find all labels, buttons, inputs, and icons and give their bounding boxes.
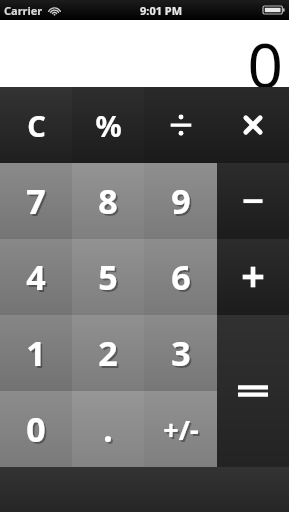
staticText: 7 (28, 180, 48, 226)
button[interactable]: +/- (144, 391, 217, 467)
staticText: 3 (171, 330, 191, 376)
staticText: 6 (171, 254, 191, 300)
button[interactable]: 0 (0, 391, 72, 467)
button[interactable]: Divide (144, 87, 217, 163)
staticText: 0 (26, 406, 46, 452)
staticText: 4 (26, 254, 46, 300)
button[interactable]: 2 (72, 315, 144, 391)
staticText: . (103, 406, 113, 452)
button[interactable]: 7 (0, 163, 72, 239)
button[interactable]: 6 (144, 239, 217, 315)
staticText: 9 (173, 180, 193, 226)
staticText: 9 (171, 178, 191, 224)
button[interactable]: Equals (217, 315, 289, 467)
staticText: 8 (98, 178, 118, 224)
button[interactable]: 1 (0, 315, 72, 391)
staticText: 0 (247, 22, 283, 89)
staticText: 0 (28, 408, 48, 454)
button[interactable]: Minus (217, 163, 289, 239)
button[interactable]: . (72, 391, 144, 467)
staticText: 4 (28, 256, 48, 302)
staticText: 1 (28, 332, 48, 378)
button[interactable]: 9 (144, 163, 217, 239)
staticText: 2 (98, 330, 118, 376)
button[interactable]: Multiply (217, 87, 289, 163)
staticText: 3 (173, 332, 193, 378)
staticText: 8 (100, 180, 120, 226)
staticText: 2 (100, 332, 120, 378)
staticText: 5 (98, 254, 118, 300)
button[interactable]: 4 (0, 239, 72, 315)
staticText: Carrier (4, 3, 43, 18)
staticText: 9:01 PM (140, 3, 183, 18)
staticText: 7 (26, 178, 46, 224)
staticText: +/- (165, 413, 201, 450)
staticText: % (95, 106, 122, 145)
staticText: C (27, 106, 46, 145)
staticText: 6 (173, 256, 193, 302)
button[interactable]: % (72, 87, 144, 163)
button[interactable]: C (0, 87, 72, 163)
staticText: +/- (163, 411, 199, 448)
button[interactable]: 5 (72, 239, 144, 315)
button[interactable]: 3 (144, 315, 217, 391)
staticText: 5 (100, 256, 120, 302)
staticText: . (105, 408, 115, 454)
button[interactable]: Plus (217, 239, 289, 315)
button[interactable]: 8 (72, 163, 144, 239)
staticText: 1 (26, 330, 46, 376)
